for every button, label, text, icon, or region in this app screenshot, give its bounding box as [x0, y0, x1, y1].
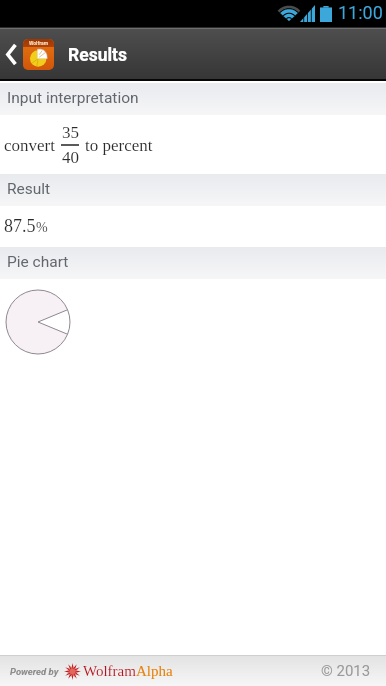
staticText: 87.5	[4, 216, 36, 236]
staticText: Input interpretation	[7, 89, 139, 107]
staticText: Alpha	[136, 663, 173, 680]
staticText: Result	[7, 180, 51, 198]
staticText: Pie chart	[7, 253, 69, 271]
staticText: convert	[4, 136, 55, 155]
staticText: Powered by	[10, 666, 59, 677]
staticText: Wolfram	[83, 663, 136, 680]
staticText: © 2013	[321, 662, 371, 680]
staticText: Wolfram	[29, 40, 48, 46]
button[interactable]: Navigate up	[0, 37, 54, 71]
staticText: to percent	[85, 136, 153, 155]
staticText: Results	[68, 45, 127, 66]
other: Navigate up	[3, 37, 20, 71]
staticText: 40	[62, 148, 79, 167]
staticText: %	[36, 220, 48, 236]
staticText: 35	[62, 123, 79, 142]
staticText: 11:00	[338, 2, 383, 23]
